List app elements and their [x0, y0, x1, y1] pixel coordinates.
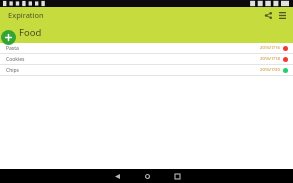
button[interactable]: More options	[275, 8, 289, 22]
staticText: Cookies	[6, 56, 25, 63]
button[interactable]: Back	[109, 169, 125, 183]
staticText: Expiration	[8, 10, 44, 20]
button[interactable]: Add item	[1, 30, 16, 45]
button[interactable]: Home	[139, 169, 155, 183]
staticText: Chips	[6, 67, 20, 74]
staticText: Food	[19, 26, 42, 39]
staticText: 2016/7/18	[260, 56, 280, 62]
staticText: 2016/7/16	[260, 45, 280, 51]
button[interactable]: Chips	[0, 65, 293, 76]
staticText: 2016/7/30	[260, 67, 280, 73]
button[interactable]: Cookies	[0, 54, 293, 65]
button[interactable]: Share	[261, 8, 275, 22]
button[interactable]: Pasta	[0, 43, 293, 54]
button[interactable]: Recent apps	[169, 169, 185, 183]
staticText: Pasta	[6, 45, 19, 52]
